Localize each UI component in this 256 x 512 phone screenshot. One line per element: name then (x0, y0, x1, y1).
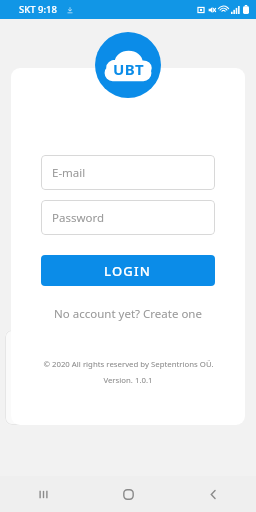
staticText: E-mail (52, 165, 86, 181)
button[interactable]: Password (41, 200, 215, 235)
button[interactable]: LOGIN (41, 255, 215, 286)
staticText: © 2020 All rights reserved by Septentrio… (43, 359, 214, 370)
staticText: Password (52, 210, 105, 226)
button[interactable]: No account yet? Create one (53, 304, 203, 324)
button[interactable]: E-mail (41, 155, 215, 190)
staticText: No account yet? Create one (54, 306, 202, 322)
button[interactable]: Recents (0, 476, 86, 512)
button[interactable]: Back (171, 476, 256, 512)
staticText: SKT 9:18 (19, 3, 57, 16)
staticText: Version. 1.0.1 (103, 375, 153, 386)
button[interactable]: Home (86, 476, 171, 512)
staticText: LOGIN (104, 262, 152, 280)
other: UBT logo (95, 32, 161, 98)
staticText: UBT (113, 59, 144, 79)
